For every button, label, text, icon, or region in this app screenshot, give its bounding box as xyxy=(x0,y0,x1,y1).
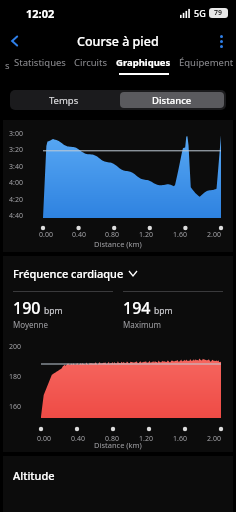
button[interactable]: Temps xyxy=(10,90,118,110)
staticText: 79 xyxy=(214,8,223,18)
staticText: 3:00 xyxy=(9,129,23,139)
staticText: 4:20 xyxy=(9,195,23,205)
staticText: 200 xyxy=(9,342,22,352)
staticText: Statistiques xyxy=(14,56,66,69)
staticText: 180 xyxy=(9,372,22,382)
staticText: 0.00 xyxy=(39,230,53,240)
staticText: 194 xyxy=(123,297,151,319)
staticText: 1.20 xyxy=(139,434,153,444)
staticText: 190 xyxy=(13,297,41,319)
button[interactable]: Back xyxy=(0,26,30,56)
button[interactable]: Fréquence cardiaque xyxy=(13,266,233,281)
staticText: Course à pied xyxy=(77,33,159,50)
staticText: 2.00 xyxy=(207,434,221,444)
staticText: 0.40 xyxy=(72,230,86,240)
staticText: 3:40 xyxy=(9,162,23,172)
staticText: 3:20 xyxy=(9,145,23,155)
staticText: Maximum xyxy=(123,319,161,330)
button[interactable]: Graphiques xyxy=(116,56,171,75)
staticText: Circuits xyxy=(74,56,108,69)
staticText: Moyenne xyxy=(13,319,48,330)
staticText: Graphiques xyxy=(116,56,171,69)
staticText: 1.20 xyxy=(139,230,153,240)
staticText: 0.80 xyxy=(105,230,119,240)
staticText: 4:40 xyxy=(9,211,23,221)
button[interactable]: Circuits xyxy=(74,56,108,75)
button[interactable]: Équipement xyxy=(179,56,234,75)
staticText: 4:00 xyxy=(9,178,23,188)
staticText: 12:02 xyxy=(26,6,55,21)
staticText: Temps xyxy=(49,94,79,107)
staticText: 0.80 xyxy=(105,434,119,444)
staticText: Altitude xyxy=(13,468,55,483)
button[interactable]: Statistiques xyxy=(14,56,66,75)
button[interactable]: More options xyxy=(206,26,236,56)
staticText: 0.00 xyxy=(37,434,51,444)
staticText: Fréquence cardiaque xyxy=(13,266,124,281)
button[interactable]: Distance xyxy=(120,92,224,108)
staticText: 160 xyxy=(9,402,22,412)
staticText: 5G xyxy=(194,7,206,19)
staticText: 1.60 xyxy=(173,434,187,444)
staticText: 1.60 xyxy=(173,230,187,240)
staticText: Distance (km) xyxy=(94,239,142,249)
staticText: s xyxy=(5,59,10,72)
staticText: Distance (km) xyxy=(94,440,142,450)
staticText: bpm xyxy=(44,305,63,317)
staticText: 0.40 xyxy=(71,434,85,444)
staticText: Distance xyxy=(152,94,192,107)
staticText: 2.00 xyxy=(207,230,221,240)
staticText: bpm xyxy=(154,305,173,317)
staticText: Équipement xyxy=(179,56,234,69)
